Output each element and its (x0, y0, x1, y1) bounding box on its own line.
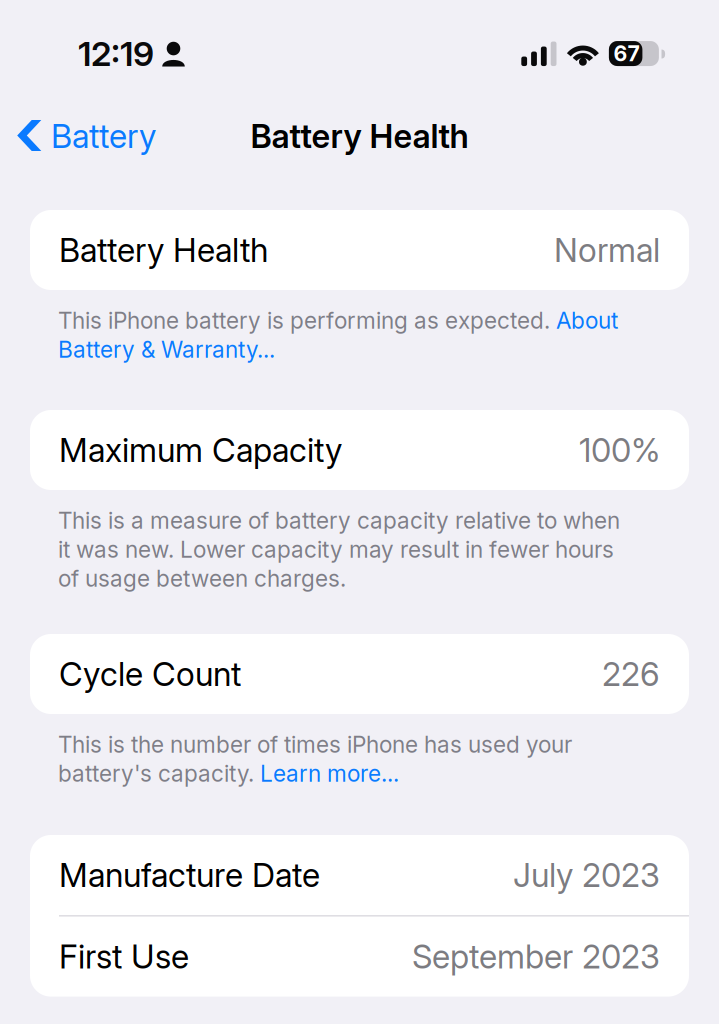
staticText: July 2023 (513, 857, 660, 893)
button[interactable]: Maximum Capacity (30, 410, 689, 490)
staticText: About (556, 307, 618, 334)
staticText: Battery Health (250, 118, 468, 154)
button[interactable]: First Use (30, 917, 689, 997)
staticText: it was new. Lower capacity may result in… (58, 536, 614, 563)
button[interactable]: Manufacture Date (30, 835, 689, 915)
staticText: This iPhone battery is performing as exp… (58, 307, 556, 334)
staticText: Learn more... (260, 760, 399, 787)
button[interactable]: Cycle Count (30, 634, 689, 714)
staticText: This is the number of times iPhone has u… (58, 731, 572, 758)
staticText: Manufacture Date (59, 857, 320, 893)
staticText: Battery Health (59, 232, 268, 268)
staticText: September 2023 (412, 938, 660, 975)
staticText: 100% (579, 432, 660, 468)
button[interactable]: Battery (0, 88, 170, 184)
staticText: of usage between charges. (58, 565, 346, 592)
staticText: This is a measure of battery capacity re… (58, 507, 620, 534)
staticText: Battery & Warranty... (58, 336, 275, 363)
staticText: Cycle Count (59, 656, 241, 692)
staticText: 12:19 (78, 34, 154, 73)
staticText: 67 (613, 42, 639, 65)
staticText: 226 (602, 656, 660, 692)
staticText: Normal (554, 232, 660, 268)
staticText: Maximum Capacity (59, 432, 342, 468)
button[interactable]: Battery Health (30, 210, 689, 290)
staticText: First Use (59, 938, 189, 975)
staticText: battery's capacity. (58, 760, 260, 787)
staticText: Battery (51, 118, 156, 154)
